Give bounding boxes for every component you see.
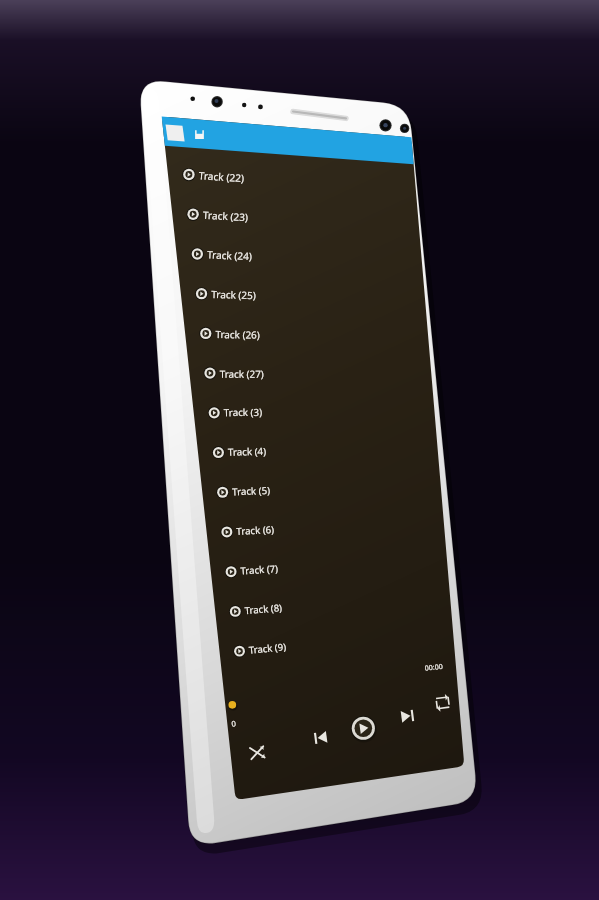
button[interactable]: Music player track list	[0, 0, 599, 900]
